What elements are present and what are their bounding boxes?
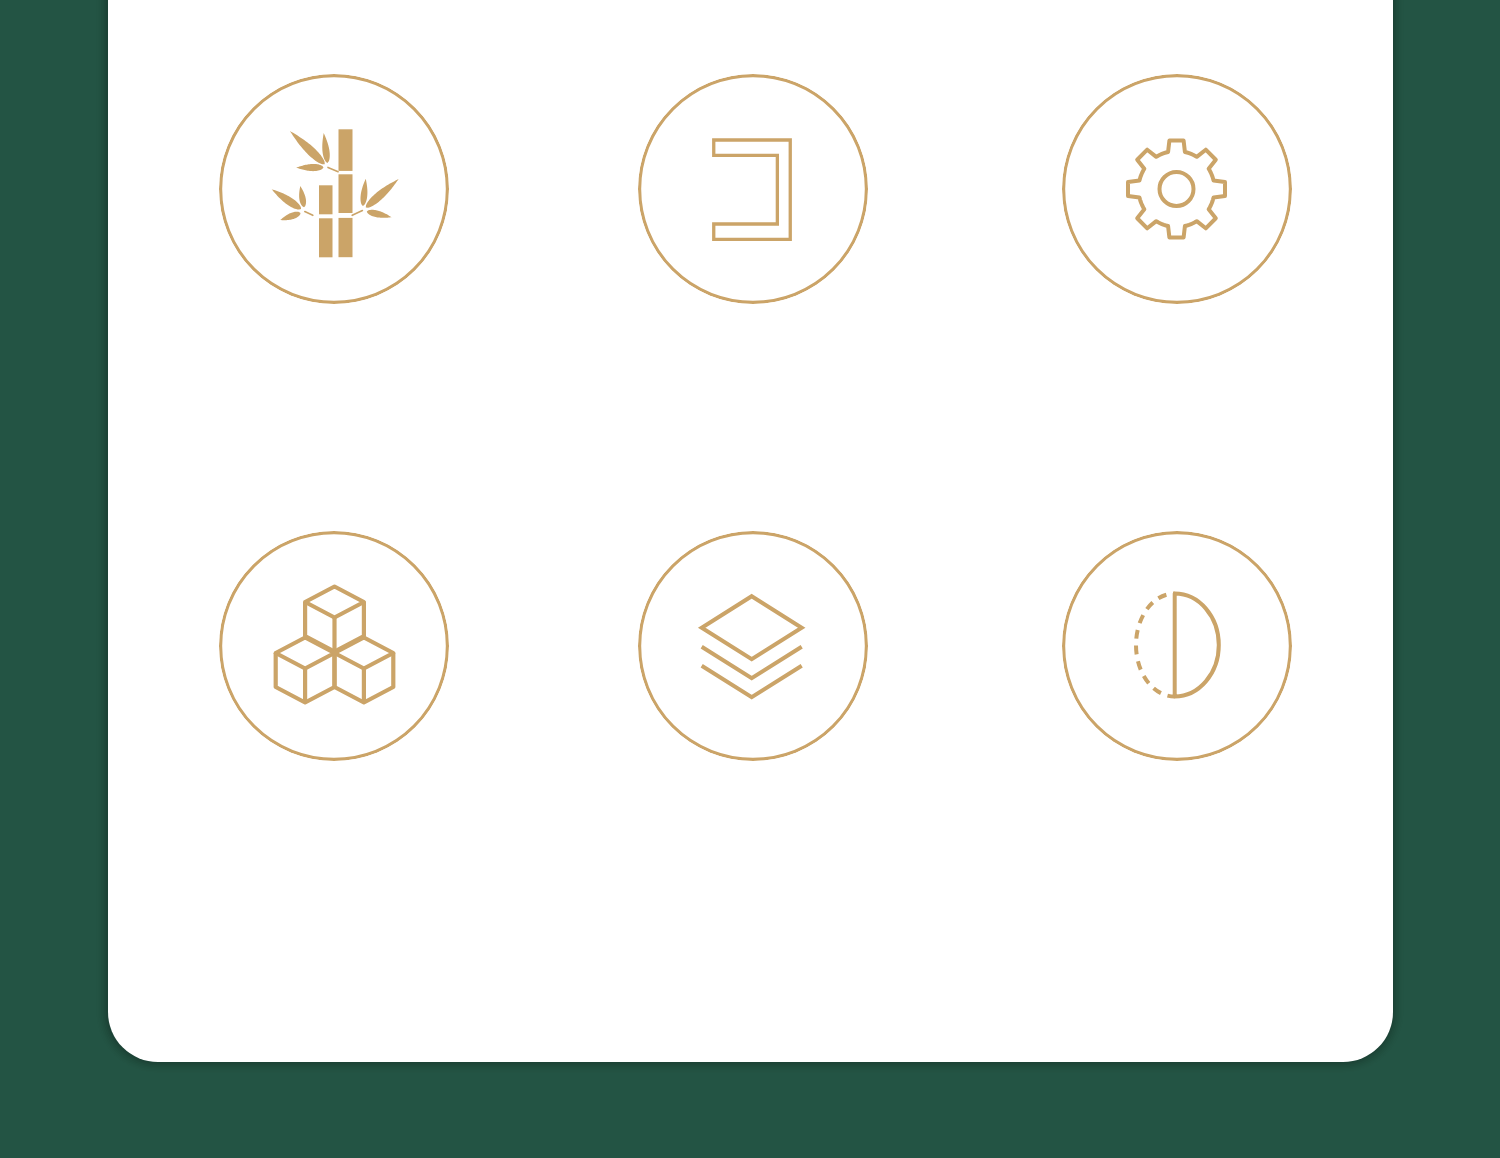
button[interactable]: Bamboo — [219, 74, 449, 304]
button[interactable]: Contrast — [1062, 531, 1292, 761]
button[interactable]: Bracket — [638, 74, 868, 304]
button[interactable]: Layers — [638, 531, 868, 761]
button[interactable]: Blocks — [219, 531, 449, 761]
button[interactable]: Settings — [1062, 74, 1292, 304]
